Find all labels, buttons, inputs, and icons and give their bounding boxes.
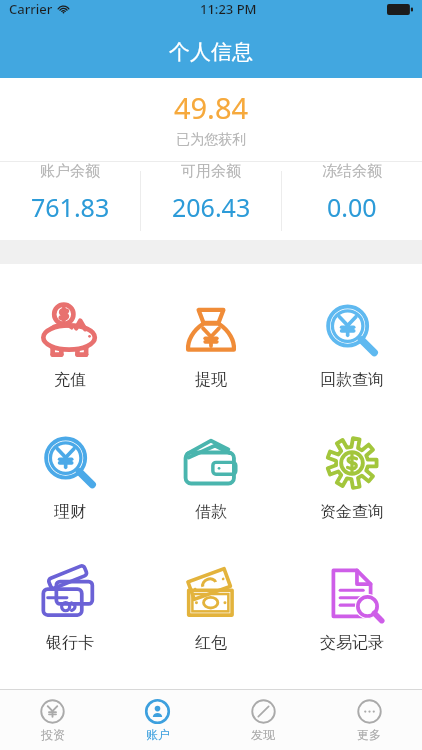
staticText: 投资 [41,727,65,742]
staticText: 银行卡 [46,633,94,653]
button[interactable]: 更多 [316,694,422,747]
staticText: 充值 [54,370,86,390]
staticText: 理财 [54,502,86,522]
staticText: 资金查询 [320,502,384,522]
staticText: 更多 [357,727,381,742]
staticText: 发现 [251,727,275,742]
staticText: 已为您获利 [0,131,422,149]
button[interactable]: 交易记录 [281,557,422,659]
staticText: 回款查询 [320,370,384,390]
button[interactable]: 发现 [210,694,316,747]
staticText: 206.43 [172,190,251,224]
staticText: 账户 [146,727,170,742]
button[interactable]: 充值 [0,294,140,396]
staticText: 提现 [195,370,227,390]
staticText: 49.84 [0,88,422,127]
staticText: 11:23 PM [200,0,257,18]
button[interactable]: 账户 [105,694,210,747]
button[interactable]: 冻结余额 [282,162,422,224]
button[interactable]: 提现 [140,294,281,396]
staticText: 借款 [195,502,227,522]
staticText: 个人信息 [169,39,253,65]
staticText: 0.00 [327,190,377,224]
button[interactable]: 可用余额 [141,162,281,224]
staticText: Carrier [9,0,53,18]
staticText: 冻结余额 [322,162,382,181]
button[interactable]: 银行卡 [0,557,140,659]
button[interactable]: 理财 [0,426,140,528]
button[interactable]: 资金查询 [281,426,422,528]
staticText: 账户余额 [40,162,100,181]
button[interactable]: 投资 [0,694,105,747]
button[interactable]: 红包 [140,557,281,659]
staticText: 红包 [195,633,227,653]
button[interactable]: 账户余额 [0,162,140,224]
button[interactable]: 回款查询 [281,294,422,396]
button[interactable]: 借款 [140,426,281,528]
staticText: 761.83 [31,190,110,224]
staticText: 交易记录 [320,633,384,653]
staticText: 可用余额 [181,162,241,181]
